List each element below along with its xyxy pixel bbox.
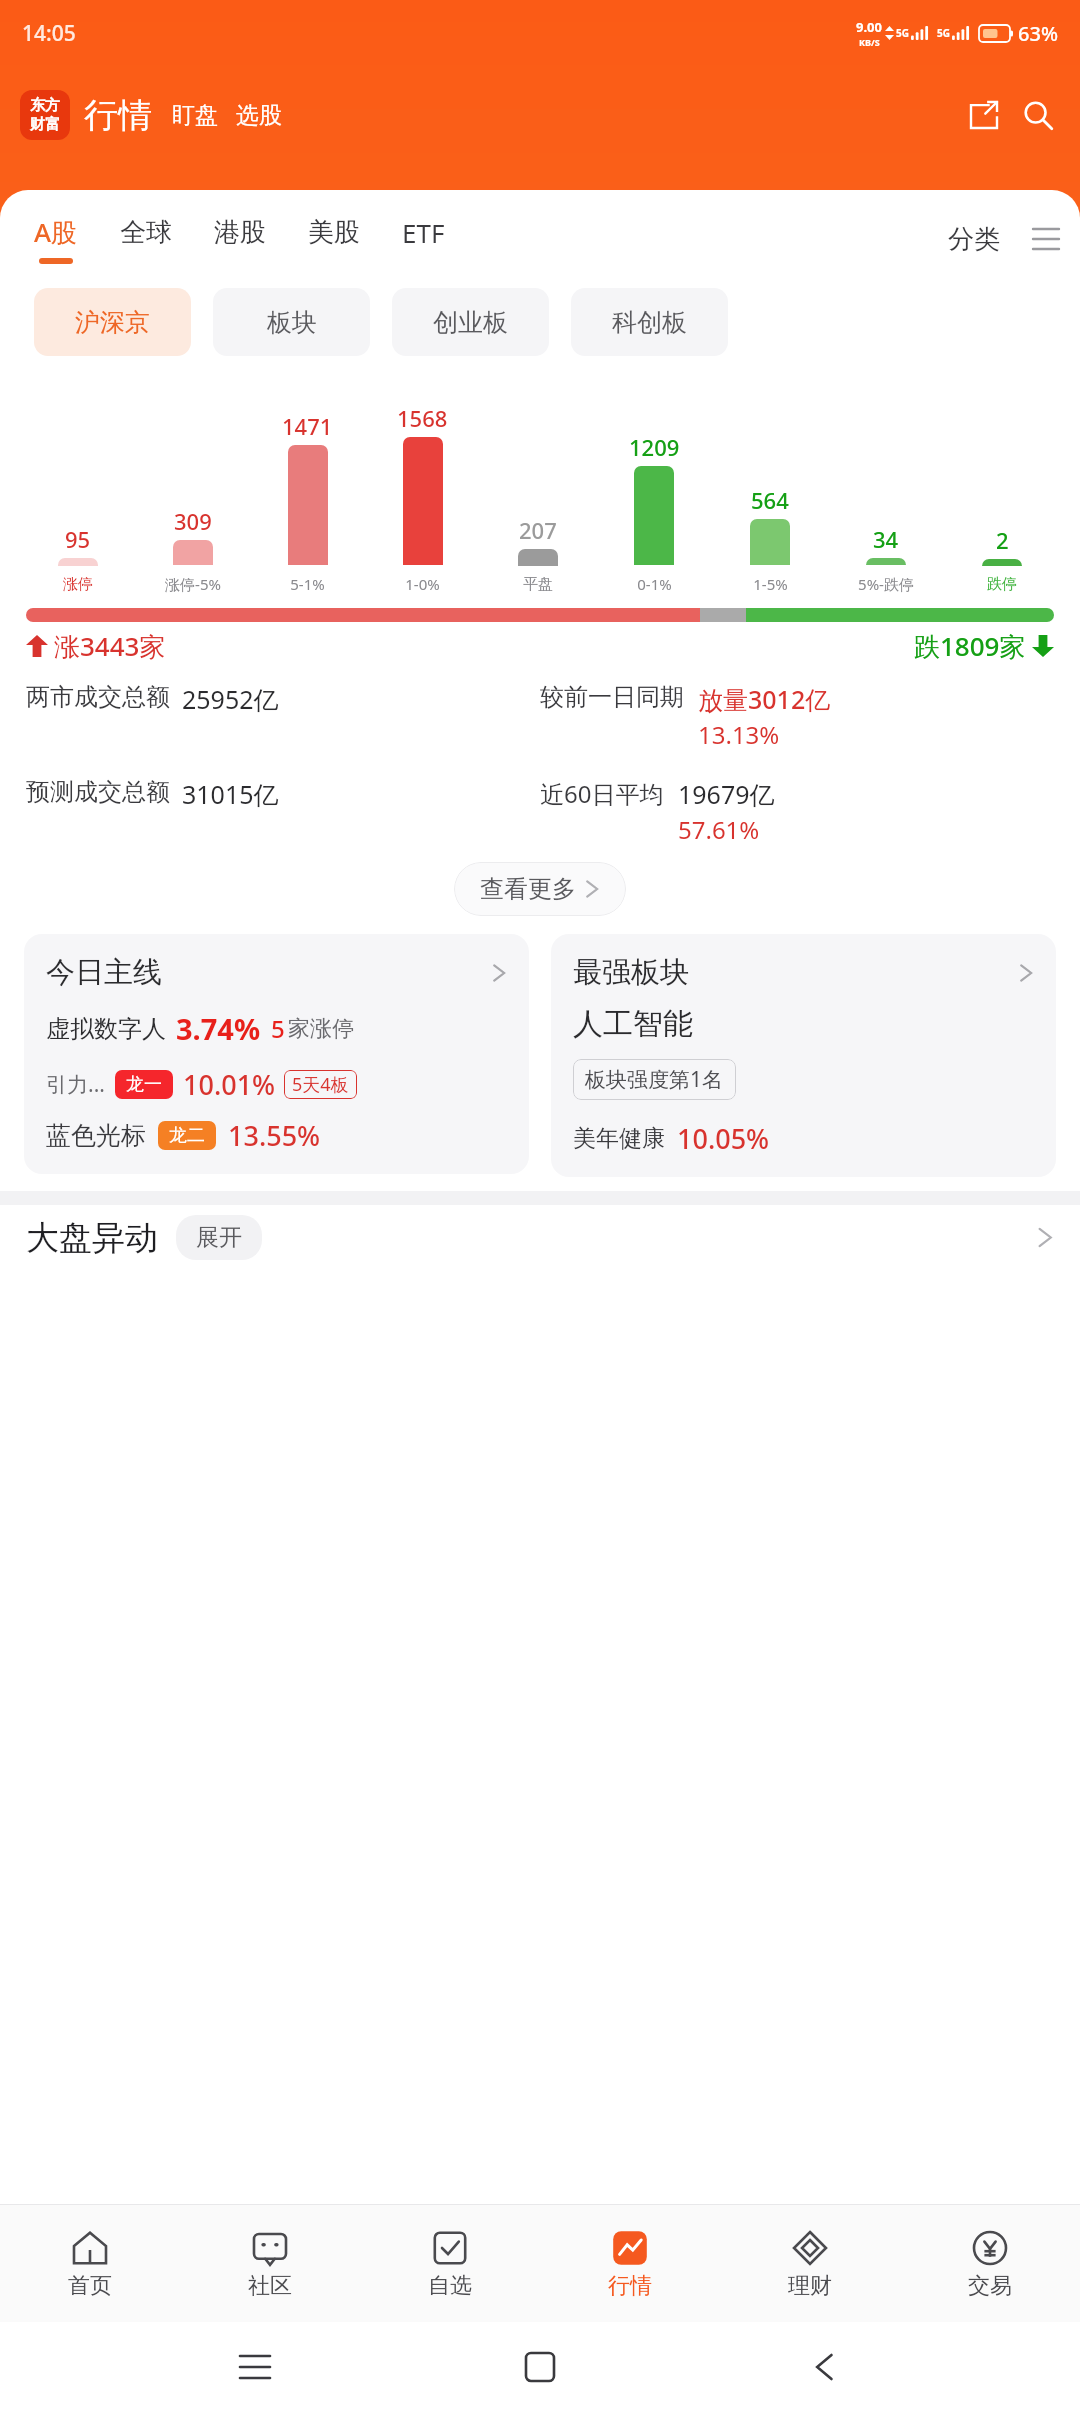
- staticText: 34: [873, 524, 899, 554]
- staticText: 行情: [608, 2272, 652, 2300]
- staticText: 309: [174, 506, 212, 536]
- button[interactable]: Share: [964, 95, 1004, 135]
- staticText: 较前一日同期: [540, 682, 684, 712]
- staticText: 13.55%: [228, 1117, 321, 1154]
- staticText: 虚拟数字人: [46, 1014, 166, 1044]
- staticText: 美年健康: [573, 1124, 665, 1153]
- staticText: 10.05%: [677, 1120, 770, 1157]
- staticText: 交易: [968, 2272, 1012, 2300]
- staticText: 沪深京: [75, 307, 150, 338]
- staticText: 自选: [428, 2272, 472, 2300]
- staticText: 5G: [937, 26, 950, 40]
- staticText: 1-5%: [753, 574, 788, 594]
- button[interactable]: 行情: [84, 94, 152, 137]
- staticText: 涨停-5%: [165, 574, 221, 594]
- staticText: 社区: [248, 2272, 292, 2300]
- staticText: 19679亿: [678, 777, 775, 811]
- staticText: 科创板: [612, 307, 687, 338]
- staticText: 0-1%: [637, 574, 672, 594]
- staticText: 龙一: [126, 1073, 162, 1096]
- button[interactable]: 社区: [180, 2204, 360, 2322]
- button[interactable]: 最强板块: [551, 934, 1056, 1177]
- staticText: 2: [996, 525, 1009, 555]
- button[interactable]: 板块: [213, 288, 370, 356]
- staticText: 95: [65, 524, 91, 554]
- staticText: 板块强度第1名: [585, 1065, 724, 1094]
- staticText: 25952亿: [182, 682, 279, 716]
- staticText: 创业板: [433, 307, 508, 338]
- button[interactable]: 沪深京: [34, 288, 191, 356]
- staticText: 美股: [308, 216, 360, 249]
- staticText: 全球: [120, 216, 172, 249]
- button[interactable]: A股: [34, 190, 120, 288]
- button[interactable]: 自选: [360, 2204, 540, 2322]
- staticText: A股: [34, 214, 78, 250]
- button[interactable]: 科创板: [571, 288, 728, 356]
- staticText: 板块: [267, 307, 317, 338]
- button[interactable]: 创业板: [392, 288, 549, 356]
- button[interactable]: 东方: [20, 90, 70, 140]
- staticText: 跌1809家: [914, 628, 1026, 664]
- staticText: 蓝色光标: [46, 1120, 146, 1151]
- staticText: 引力...: [46, 1070, 105, 1099]
- button[interactable]: 盯盘: [172, 101, 218, 130]
- staticText: 平盘: [523, 575, 553, 594]
- staticText: 14:05: [22, 19, 76, 48]
- staticText: 5天4板: [292, 1072, 349, 1097]
- button[interactable]: 选股: [236, 101, 282, 130]
- button[interactable]: Back: [795, 2337, 855, 2397]
- button[interactable]: 美股: [308, 190, 402, 288]
- button[interactable]: 大盘异动: [26, 1215, 1054, 1260]
- staticText: KB/S: [859, 36, 880, 48]
- staticText: 207: [519, 515, 557, 545]
- staticText: 港股: [214, 216, 266, 249]
- button[interactable]: ETF: [402, 190, 487, 288]
- staticText: 31015亿: [182, 777, 279, 811]
- staticText: 9.00: [856, 18, 882, 36]
- staticText: 3.74%: [176, 1009, 261, 1048]
- staticText: 最强板块: [573, 954, 689, 991]
- button[interactable]: 交易: [900, 2204, 1080, 2322]
- staticText: 5%-跌停: [858, 574, 914, 594]
- staticText: 跌停: [987, 575, 1017, 594]
- staticText: 涨停: [63, 575, 93, 594]
- staticText: 5: [271, 1012, 285, 1045]
- staticText: 查看更多: [480, 874, 576, 904]
- button[interactable]: 行情: [540, 2204, 720, 2322]
- button[interactable]: 港股: [214, 190, 308, 288]
- button[interactable]: 全球: [120, 190, 214, 288]
- button[interactable]: 查看更多: [454, 862, 626, 916]
- staticText: 展开: [196, 1223, 242, 1252]
- staticText: 东方: [30, 96, 60, 115]
- staticText: 5G: [896, 26, 909, 40]
- staticText: 放量3012亿: [698, 682, 831, 716]
- button[interactable]: 分类: [948, 223, 1000, 256]
- staticText: 1209: [629, 432, 680, 462]
- staticText: 首页: [68, 2272, 112, 2300]
- staticText: 1568: [397, 403, 448, 433]
- staticText: 今日主线: [46, 954, 162, 991]
- staticText: 近60日平均: [540, 777, 664, 810]
- button[interactable]: Search: [1016, 93, 1060, 137]
- staticText: 10.01%: [183, 1066, 276, 1103]
- staticText: 5-1%: [290, 574, 325, 594]
- staticText: 63%: [1018, 20, 1058, 47]
- button[interactable]: More categories: [1026, 219, 1066, 259]
- staticText: 龙二: [169, 1124, 205, 1147]
- staticText: 理财: [788, 2272, 832, 2300]
- button[interactable]: 展开: [176, 1215, 262, 1260]
- button[interactable]: 今日主线: [24, 934, 529, 1174]
- button[interactable]: Home: [510, 2337, 570, 2397]
- staticText: 预测成交总额: [26, 777, 170, 807]
- staticText: 57.61%: [678, 813, 760, 846]
- staticText: 1-0%: [405, 574, 440, 594]
- button[interactable]: 首页: [0, 2204, 180, 2322]
- staticText: 大盘异动: [26, 1217, 158, 1259]
- staticText: ETF: [402, 215, 445, 250]
- staticText: 13.13%: [698, 718, 780, 751]
- staticText: 财富: [30, 115, 60, 134]
- button[interactable]: Recents: [225, 2337, 285, 2397]
- staticText: 家涨停: [288, 1015, 354, 1043]
- staticText: 两市成交总额: [26, 682, 170, 712]
- button[interactable]: 理财: [720, 2204, 900, 2322]
